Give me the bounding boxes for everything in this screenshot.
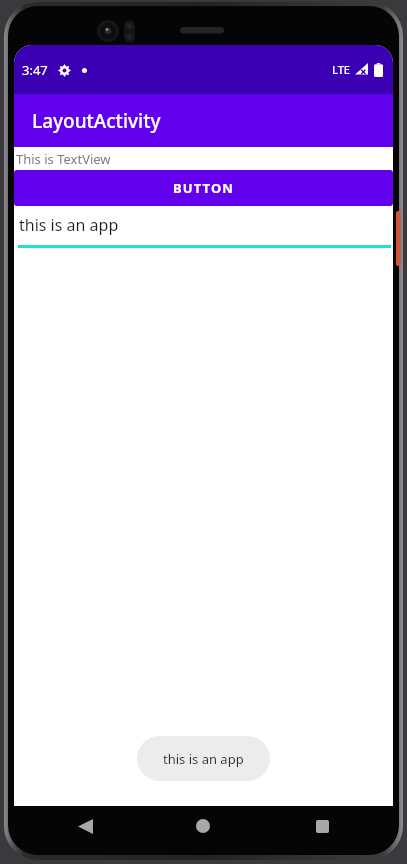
button[interactable]: Recent apps [299, 806, 345, 846]
button[interactable]: this is an app [14, 206, 393, 248]
staticText: BUTTON [173, 179, 234, 197]
button[interactable]: BUTTON [14, 170, 393, 206]
staticText: this is an app [19, 214, 119, 236]
staticText: 3:47 [22, 61, 48, 79]
staticText: this is an app [163, 750, 244, 768]
staticText: LTE [332, 62, 350, 77]
button[interactable]: Home [180, 806, 226, 846]
staticText: LayoutActivity [32, 108, 161, 134]
button[interactable]: This is TextView [14, 147, 393, 170]
button[interactable]: Back [62, 806, 108, 846]
staticText: This is TextView [16, 150, 111, 168]
